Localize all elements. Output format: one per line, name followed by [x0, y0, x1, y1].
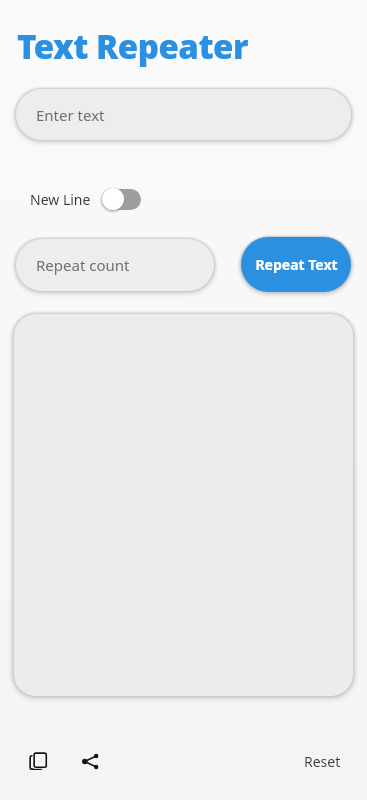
button[interactable]: New Line — [28, 184, 143, 214]
staticText: Repeat count — [36, 255, 130, 275]
staticText: Enter text — [36, 105, 105, 125]
staticText: New Line — [30, 190, 91, 209]
button[interactable]: Enter text — [16, 89, 351, 140]
button[interactable]: Copy — [16, 739, 60, 783]
staticText: Reset — [304, 752, 341, 771]
staticText: Repeat Text — [255, 255, 338, 274]
button[interactable]: Reset — [294, 744, 351, 779]
button[interactable]: Repeat Text — [241, 237, 351, 292]
button[interactable]: Repeat count — [16, 239, 214, 291]
button[interactable]: Share — [68, 739, 112, 783]
staticText: Text Repeater — [17, 24, 248, 69]
